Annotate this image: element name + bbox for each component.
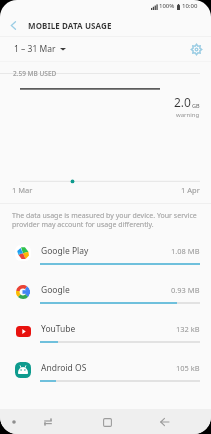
staticText: 132 kB bbox=[176, 324, 200, 334]
button[interactable]: Recents bbox=[36, 410, 60, 434]
staticText: YouTube bbox=[41, 323, 76, 335]
staticText: MOBILE DATA USAGE bbox=[28, 20, 112, 31]
staticText: Android OS bbox=[41, 362, 87, 374]
staticText: Google Play bbox=[41, 245, 89, 257]
button[interactable]: Settings bbox=[186, 39, 206, 59]
button[interactable]: Back bbox=[153, 410, 177, 434]
staticText: Google bbox=[41, 284, 70, 296]
staticText: 1.08 MB bbox=[171, 246, 200, 256]
button[interactable]: Android OS bbox=[0, 348, 211, 387]
staticText: 100% bbox=[159, 2, 175, 10]
staticText: 10:00 bbox=[182, 2, 198, 10]
button[interactable]: Google Play bbox=[0, 231, 211, 270]
staticText: 0.93 MB bbox=[171, 285, 200, 295]
button[interactable]: 1 – 31 Mar bbox=[14, 43, 66, 55]
staticText: GB bbox=[192, 102, 200, 109]
staticText: 2.0 bbox=[174, 94, 191, 110]
staticText: 2.59 MB USED bbox=[13, 69, 57, 78]
staticText: 1 – 31 Mar bbox=[14, 43, 56, 55]
staticText: 105 kB bbox=[176, 363, 200, 373]
staticText: 1 Apr bbox=[181, 185, 200, 195]
button[interactable]: Google bbox=[0, 270, 211, 309]
button[interactable]: Home bbox=[95, 410, 119, 434]
button[interactable]: YouTube bbox=[0, 309, 211, 348]
staticText: 1 Mar bbox=[12, 185, 33, 195]
staticText: The data usage is measured by your devic… bbox=[12, 211, 200, 229]
staticText: warning bbox=[176, 111, 200, 119]
button[interactable]: Pin navigation bar bbox=[8, 416, 20, 428]
button[interactable]: Navigate up bbox=[0, 14, 26, 36]
